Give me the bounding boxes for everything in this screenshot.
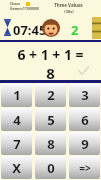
staticText: 1 <box>13 86 21 104</box>
staticText: 4 <box>13 111 21 129</box>
staticText: 6 + 1 + 1 = <box>17 45 84 64</box>
button[interactable]: 0 <box>35 156 66 179</box>
staticText: 0 <box>47 159 55 177</box>
staticText: 6 <box>81 111 89 129</box>
button[interactable]: X <box>1 156 32 179</box>
staticText: X <box>12 159 21 177</box>
button[interactable]: 6 <box>69 108 100 131</box>
button[interactable]: 4 <box>1 108 32 131</box>
button[interactable]: => <box>69 156 100 179</box>
staticText: 2 <box>47 86 55 104</box>
staticText: 9 <box>81 135 89 153</box>
staticText: Chess <box>10 1 21 6</box>
button[interactable]: 1 <box>1 83 32 107</box>
button[interactable]: 7 <box>1 132 32 155</box>
staticText: Three Values <box>54 2 83 8</box>
staticText: (30s) <box>64 9 74 14</box>
staticText: 8 <box>47 135 55 153</box>
button[interactable]: 5 <box>35 108 66 131</box>
staticText: 7 <box>13 135 21 153</box>
staticText: 8 <box>46 63 55 83</box>
staticText: 3 <box>81 86 89 104</box>
staticText: 2 <box>71 21 79 39</box>
button[interactable]: 2 <box>35 83 66 107</box>
button[interactable]: 3 <box>69 83 100 107</box>
staticText: 07:45 <box>13 21 47 39</box>
button[interactable]: 9 <box>69 132 100 155</box>
other: Timer <box>3 19 12 36</box>
button[interactable]: 8 <box>35 132 66 155</box>
staticText: Games:17000000 <box>10 6 39 11</box>
staticText: => <box>79 161 91 175</box>
other: Avatar <box>42 19 60 37</box>
staticText: 5 <box>47 111 55 129</box>
